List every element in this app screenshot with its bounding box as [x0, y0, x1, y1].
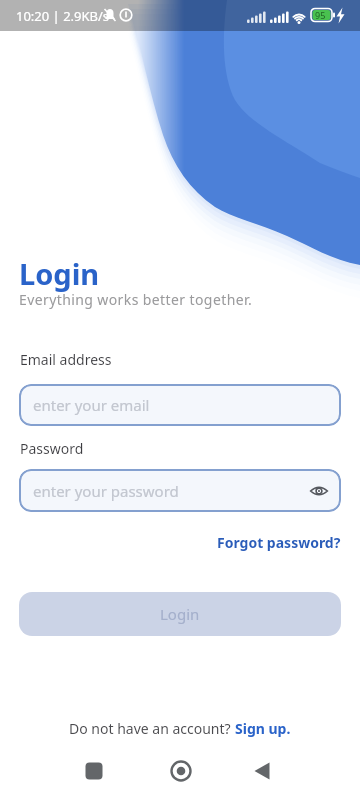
- staticText: 10:20 | 2.9KB/s: [16, 7, 110, 25]
- staticText: Login: [160, 604, 200, 624]
- button[interactable]: [165, 756, 197, 786]
- button[interactable]: Sign up.: [235, 719, 291, 738]
- staticText: 95: [315, 9, 326, 21]
- button[interactable]: [304, 476, 334, 506]
- staticText: Do not have an account?: [69, 719, 235, 738]
- button[interactable]: enter your password: [19, 469, 341, 512]
- button[interactable]: Forgot password?: [217, 533, 341, 552]
- staticText: Email address: [20, 350, 112, 369]
- staticText: enter your password: [33, 481, 179, 501]
- button[interactable]: [78, 756, 110, 786]
- staticText: Password: [20, 439, 84, 458]
- button[interactable]: [246, 756, 278, 786]
- staticText: Everything works better together.: [19, 290, 253, 309]
- button[interactable]: Login: [19, 592, 341, 636]
- staticText: enter your email: [33, 395, 150, 415]
- button[interactable]: enter your email: [19, 384, 341, 426]
- staticText: Login: [19, 254, 100, 293]
